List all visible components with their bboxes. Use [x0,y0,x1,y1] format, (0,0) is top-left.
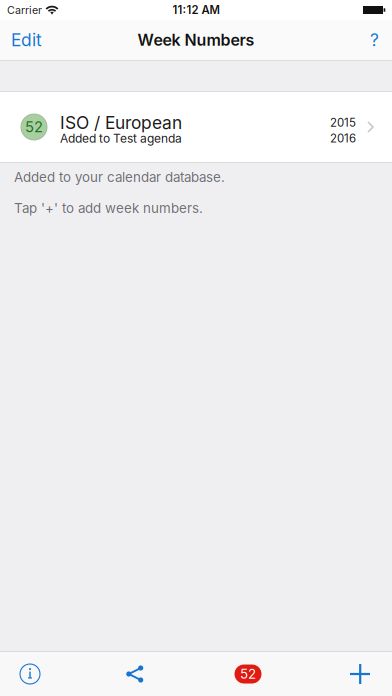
button[interactable]: Week number 52 [226,652,270,696]
button[interactable]: Edit [0,20,53,60]
button[interactable]: Share [113,652,157,696]
staticText: Added to your calendar database. [14,169,225,185]
staticText: Week Numbers [137,30,254,50]
staticText: ISO / European [60,112,182,133]
button[interactable]: Info [8,652,52,696]
button[interactable]: ? [357,20,392,60]
staticText: Tap '+' to add week numbers. [14,200,203,216]
button[interactable]: 52 [0,92,392,162]
staticText: 52 [25,118,43,136]
staticText: 2015 [330,116,356,129]
staticText: Added to Test agenda [60,131,182,146]
staticText: 52 [240,666,256,682]
staticText: 2016 [330,131,356,145]
staticText: Carrier [7,3,42,16]
staticText: 11:12 AM [172,3,219,17]
staticText: ? [370,29,379,50]
button[interactable]: Add week numbers [338,652,382,696]
staticText: Edit [11,29,42,50]
